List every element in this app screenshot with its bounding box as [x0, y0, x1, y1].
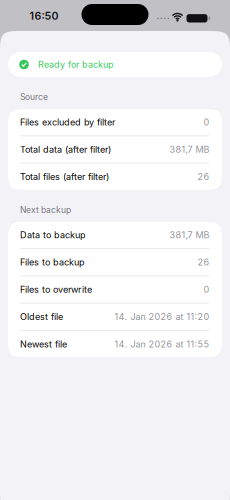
staticText: Next backup: [20, 205, 71, 215]
staticText: 16:50: [29, 9, 58, 22]
staticText: 26: [197, 257, 209, 268]
staticText: 26: [197, 171, 209, 182]
staticText: Files excluded by filter: [20, 117, 115, 128]
staticText: Files to backup: [20, 257, 85, 268]
staticText: 14. Jan 2026 at 11:55: [114, 339, 209, 350]
staticText: 381,7 MB: [169, 229, 209, 240]
staticText: 0: [203, 117, 209, 128]
staticText: Data to backup: [20, 229, 86, 240]
staticText: 0: [203, 284, 209, 295]
staticText: Newest file: [20, 339, 67, 350]
staticText: Files to overwrite: [20, 284, 92, 295]
staticText: Total data (after filter): [20, 144, 111, 155]
staticText: Total files (after filter): [20, 171, 109, 182]
staticText: 381,7 MB: [169, 144, 209, 155]
staticText: Source: [20, 92, 48, 102]
staticText: Ready for backup: [38, 59, 114, 70]
staticText: Oldest file: [20, 311, 63, 322]
staticText: 14. Jan 2026 at 11:20: [114, 311, 209, 322]
